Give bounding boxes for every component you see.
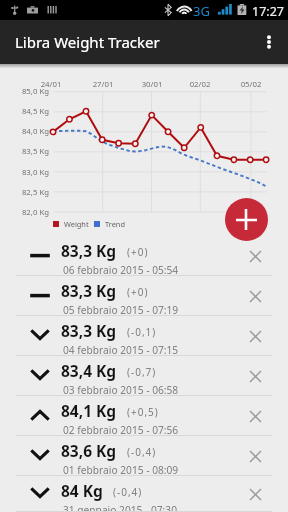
staticText: 24/01	[36, 79, 66, 90]
button[interactable]: 83,3 Kg	[0, 276, 288, 316]
button[interactable]: Delete entry	[238, 436, 272, 476]
staticText: 03 febbraio 2015 - 06:58	[63, 383, 179, 397]
staticText: (+0)	[127, 285, 149, 299]
staticText: (+0)	[127, 245, 149, 259]
button[interactable]: Delete entry	[238, 276, 272, 316]
button[interactable]: 83,3 Kg	[0, 316, 288, 356]
staticText: 83,4 Kg	[61, 360, 117, 381]
staticText: 01 febbraio 2015 - 08:09	[63, 463, 179, 477]
staticText: Trend	[105, 219, 125, 229]
button[interactable]: 84,1 Kg	[0, 396, 288, 436]
button[interactable]: More options	[249, 20, 288, 64]
staticText: 31 gennaio 2015 - 07:30	[63, 503, 177, 512]
button[interactable]: Delete entry	[238, 236, 272, 276]
staticText: 06 febbraio 2015 - 05:54	[63, 263, 179, 277]
staticText: (-0,1)	[127, 325, 157, 339]
staticText: 83,3 Kg	[61, 320, 117, 341]
staticText: 27/01	[88, 79, 118, 90]
button[interactable]: Delete entry	[238, 396, 272, 436]
staticText: (+0,5)	[127, 405, 159, 419]
button[interactable]: 84 Kg	[0, 476, 288, 512]
staticText: 83,6 Kg	[61, 440, 117, 461]
staticText: (-0,4)	[113, 485, 143, 499]
staticText: 02 febbraio 2015 - 07:56	[63, 423, 179, 437]
staticText: 83,3 Kg	[61, 240, 117, 261]
button[interactable]: 83,3 Kg	[0, 236, 288, 276]
button[interactable]: Delete entry	[238, 476, 272, 512]
staticText: Libra Weight Tracker	[15, 32, 160, 52]
staticText: 84 Kg	[61, 480, 103, 501]
staticText: 84,0 Kg	[0, 126, 49, 137]
button[interactable]: Add weight	[225, 198, 268, 241]
staticText: (-0,7)	[127, 365, 157, 379]
staticText: 83,5 Kg	[0, 146, 49, 157]
staticText: 83,0 Kg	[0, 167, 49, 178]
staticText: 82,0 Kg	[0, 207, 49, 218]
staticText: 30/01	[137, 79, 167, 90]
button[interactable]: 83,4 Kg	[0, 356, 288, 396]
staticText: 02/02	[185, 79, 215, 90]
staticText: 04 febbraio 2015 - 07:15	[63, 343, 179, 357]
button[interactable]: Delete entry	[238, 316, 272, 356]
staticText: 05 febbraio 2015 - 07:19	[63, 303, 179, 317]
staticText: 85,0 Kg	[0, 86, 49, 97]
staticText: 17:27	[252, 3, 284, 20]
staticText: 84,1 Kg	[61, 400, 117, 421]
button[interactable]: Delete entry	[238, 356, 272, 396]
staticText: 3G	[193, 2, 210, 20]
staticText: 82,5 Kg	[0, 187, 49, 198]
button[interactable]: 83,6 Kg	[0, 436, 288, 476]
staticText: 83,3 Kg	[61, 280, 117, 301]
staticText: Weight	[64, 219, 89, 229]
staticText: 05/02	[236, 79, 266, 90]
staticText: 84,5 Kg	[0, 106, 49, 117]
staticText: (-0,4)	[127, 445, 157, 459]
